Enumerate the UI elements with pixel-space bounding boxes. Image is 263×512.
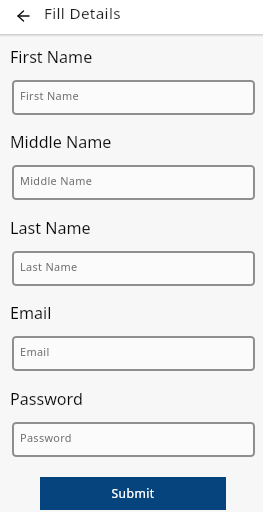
staticText: Middle Name: [10, 131, 112, 153]
button[interactable]: Last Name: [12, 251, 255, 286]
button[interactable]: Middle Name: [12, 165, 255, 200]
staticText: Email: [10, 302, 52, 324]
staticText: First Name: [20, 88, 79, 103]
button[interactable]: Password: [12, 422, 255, 457]
staticText: Last Name: [20, 259, 78, 274]
button[interactable]: Email: [12, 336, 255, 371]
staticText: First Name: [10, 46, 93, 68]
staticText: Last Name: [10, 217, 91, 239]
staticText: Fill Details: [44, 3, 121, 24]
staticText: Middle Name: [20, 173, 93, 188]
staticText: Password: [10, 388, 83, 410]
staticText: Email: [20, 344, 50, 359]
button[interactable]: First Name: [12, 80, 255, 115]
staticText: Password: [20, 430, 72, 445]
staticText: Submit: [111, 485, 155, 502]
button[interactable]: Back: [11, 4, 35, 28]
button[interactable]: Submit: [40, 477, 226, 510]
